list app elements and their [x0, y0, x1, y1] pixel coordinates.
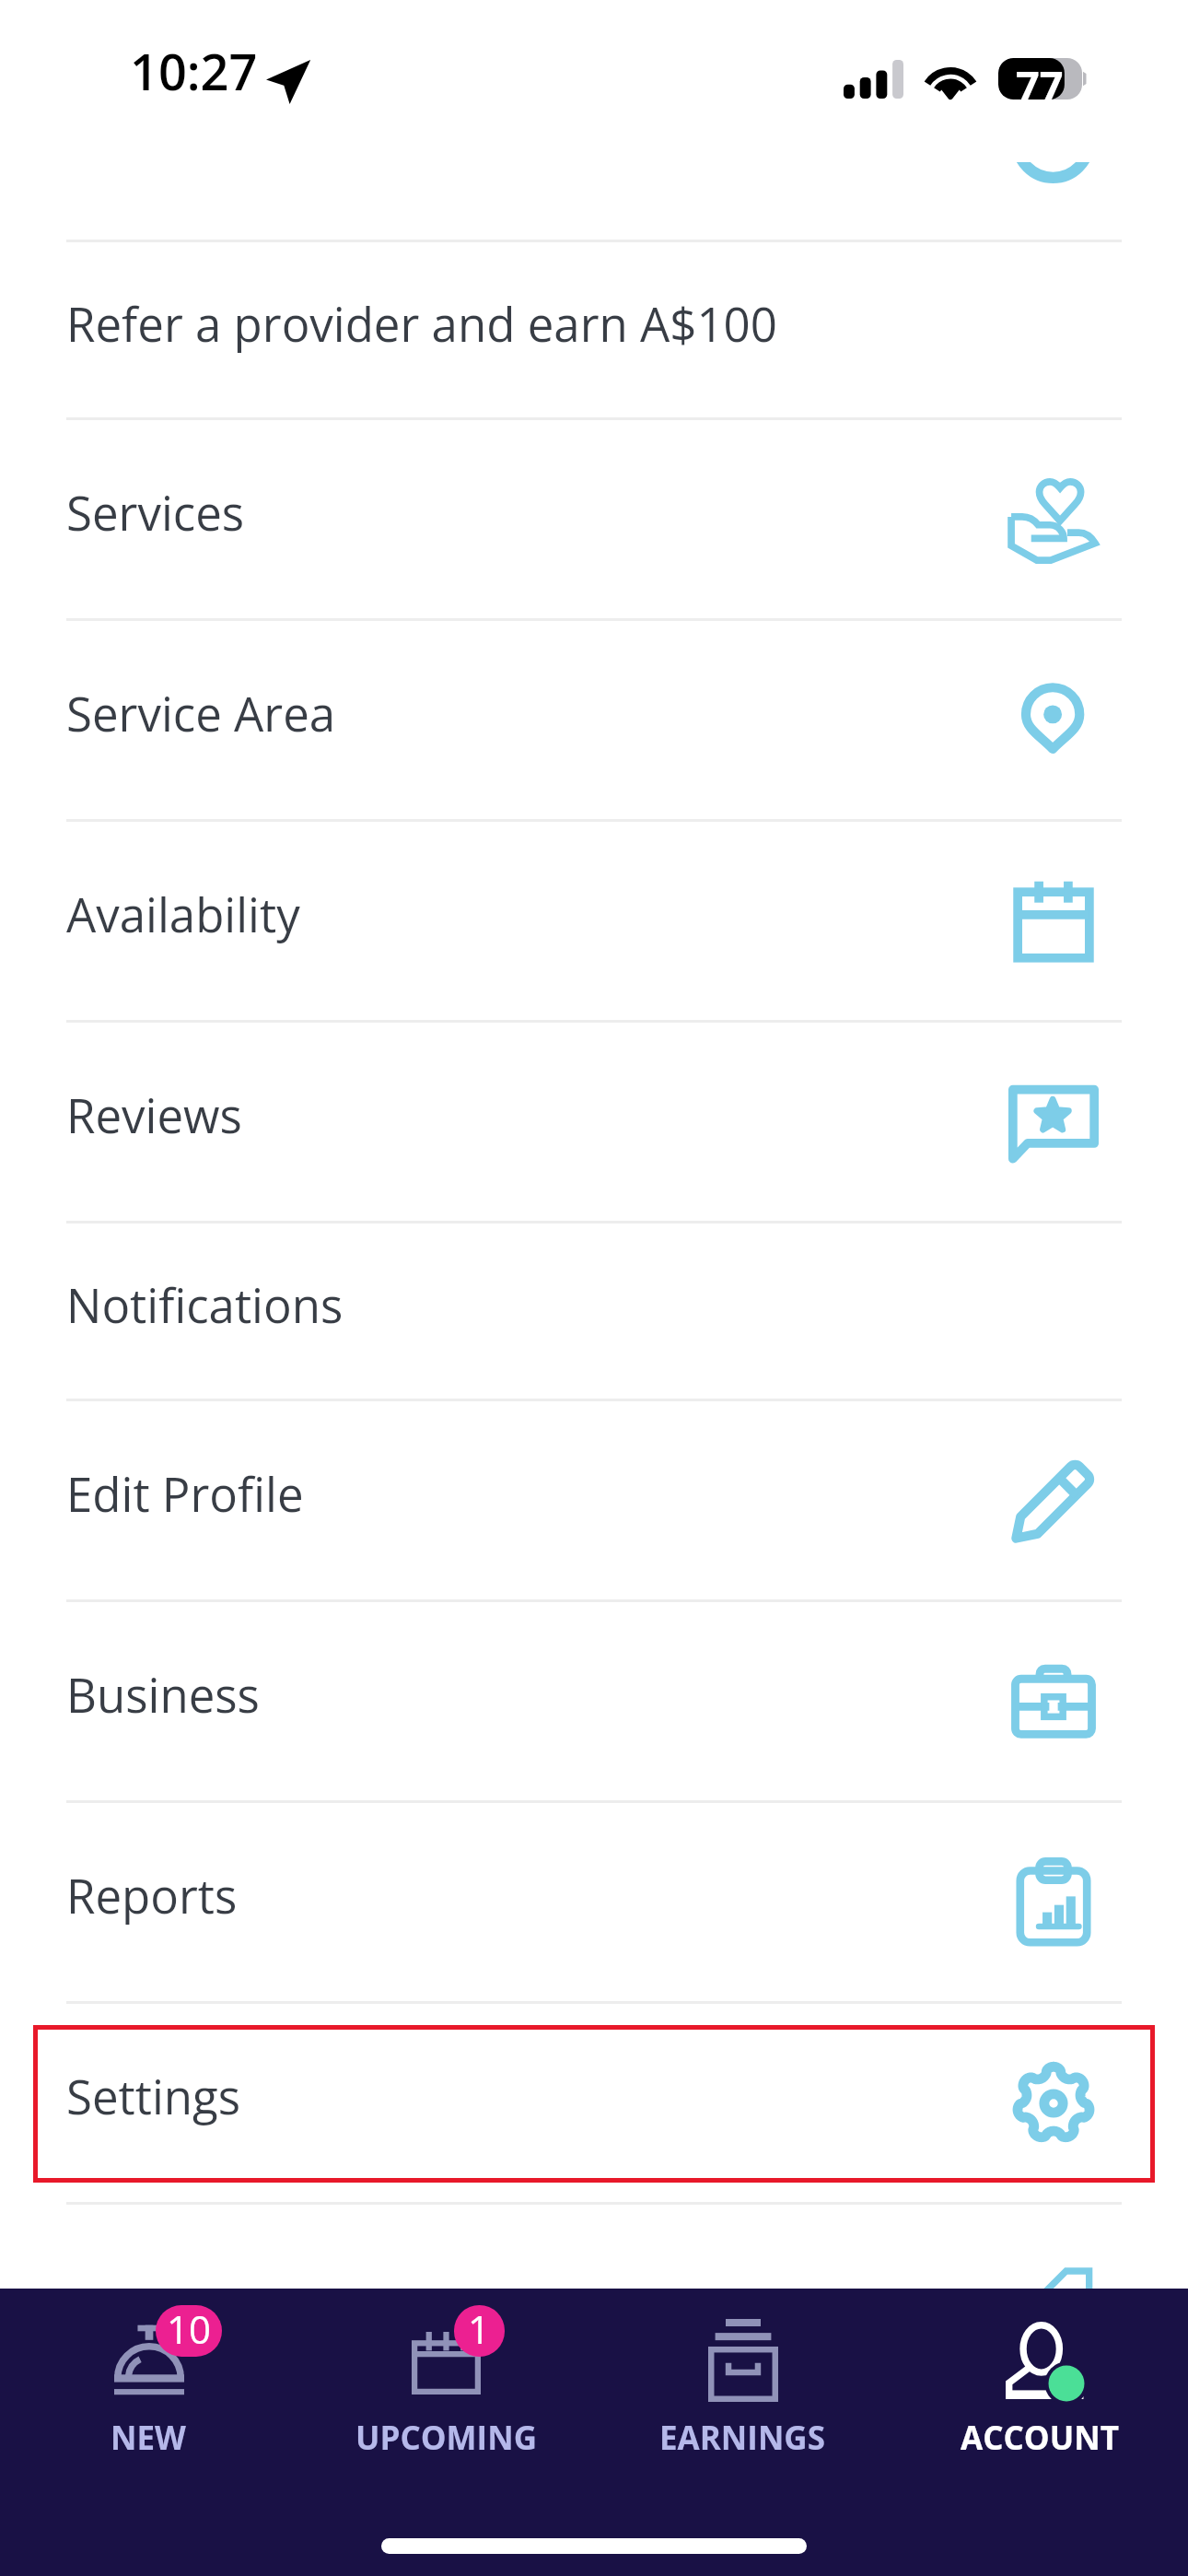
- button[interactable]: Business: [0, 1602, 1188, 1800]
- staticText: UPCOMING: [355, 2416, 537, 2460]
- button[interactable]: UPCOMING: [297, 2289, 593, 2473]
- staticText: ACCOUNT: [961, 2416, 1119, 2460]
- button[interactable]: ACCOUNT: [891, 2289, 1188, 2473]
- button[interactable]: EARNINGS: [593, 2289, 891, 2473]
- staticText: Edit Profile: [66, 1461, 304, 1525]
- staticText: Notifications: [66, 1272, 344, 1336]
- staticText: Service Area: [66, 681, 336, 744]
- button[interactable]: Availability: [0, 822, 1188, 1020]
- staticText: Settings: [66, 2064, 241, 2127]
- button[interactable]: Reviews: [0, 1023, 1188, 1221]
- staticText: Business: [66, 1662, 260, 1726]
- button[interactable]: Services: [0, 420, 1188, 618]
- button[interactable]: Settings: [0, 2004, 1188, 2202]
- button[interactable]: Edit Profile: [0, 1401, 1188, 1599]
- staticText: 10: [167, 2305, 212, 2354]
- button[interactable]: Refer a provider and earn A$100: [0, 242, 1188, 417]
- button[interactable]: NEW: [0, 2289, 297, 2473]
- staticText: Services: [66, 480, 245, 544]
- staticText: Availability: [66, 882, 300, 945]
- staticText: Reviews: [66, 1083, 242, 1146]
- staticText: Reports: [66, 1863, 238, 1926]
- button[interactable]: Reports: [0, 1803, 1188, 2001]
- staticText: NEW: [111, 2416, 186, 2460]
- staticText: Refer a provider and earn A$100: [66, 291, 777, 355]
- button[interactable]: Service Area: [0, 621, 1188, 819]
- staticText: 77: [1016, 57, 1064, 113]
- staticText: 10:27: [130, 37, 258, 105]
- button[interactable]: Notifications: [0, 1224, 1188, 1399]
- staticText: EARNINGS: [659, 2416, 825, 2460]
- staticText: 1: [468, 2305, 491, 2354]
